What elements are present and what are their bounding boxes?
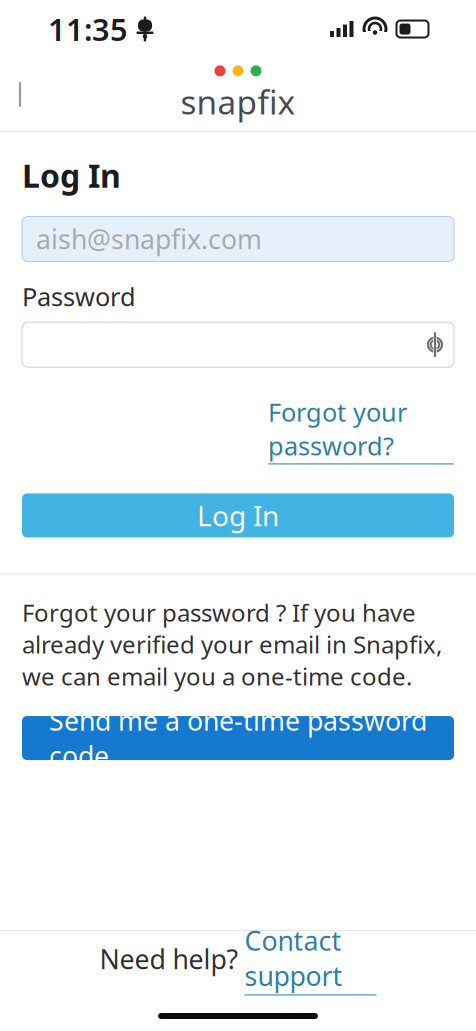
staticText: Need help? bbox=[99, 941, 238, 977]
staticText: Password bbox=[22, 279, 136, 313]
staticText: snapfix bbox=[180, 79, 295, 124]
button[interactable]: Back bbox=[0, 68, 46, 120]
staticText: Forgot your password? bbox=[268, 395, 407, 462]
staticText: Send me a one-time password code bbox=[49, 703, 427, 773]
button[interactable]: Contact support bbox=[244, 923, 376, 995]
button[interactable]: Show password bbox=[416, 325, 454, 365]
button[interactable]: Send me a one-time password code bbox=[22, 716, 454, 760]
staticText: aish@snapfix.com bbox=[36, 221, 262, 257]
staticText: Contact support bbox=[244, 923, 342, 993]
staticText: 11:35 bbox=[48, 9, 128, 49]
button[interactable]: Log In bbox=[22, 493, 454, 537]
staticText: Log In bbox=[22, 154, 121, 196]
staticText: Forgot your password ? If you have alrea… bbox=[22, 596, 442, 692]
staticText: Log In bbox=[197, 497, 279, 534]
button[interactable]: Forgot your password? bbox=[268, 395, 454, 464]
